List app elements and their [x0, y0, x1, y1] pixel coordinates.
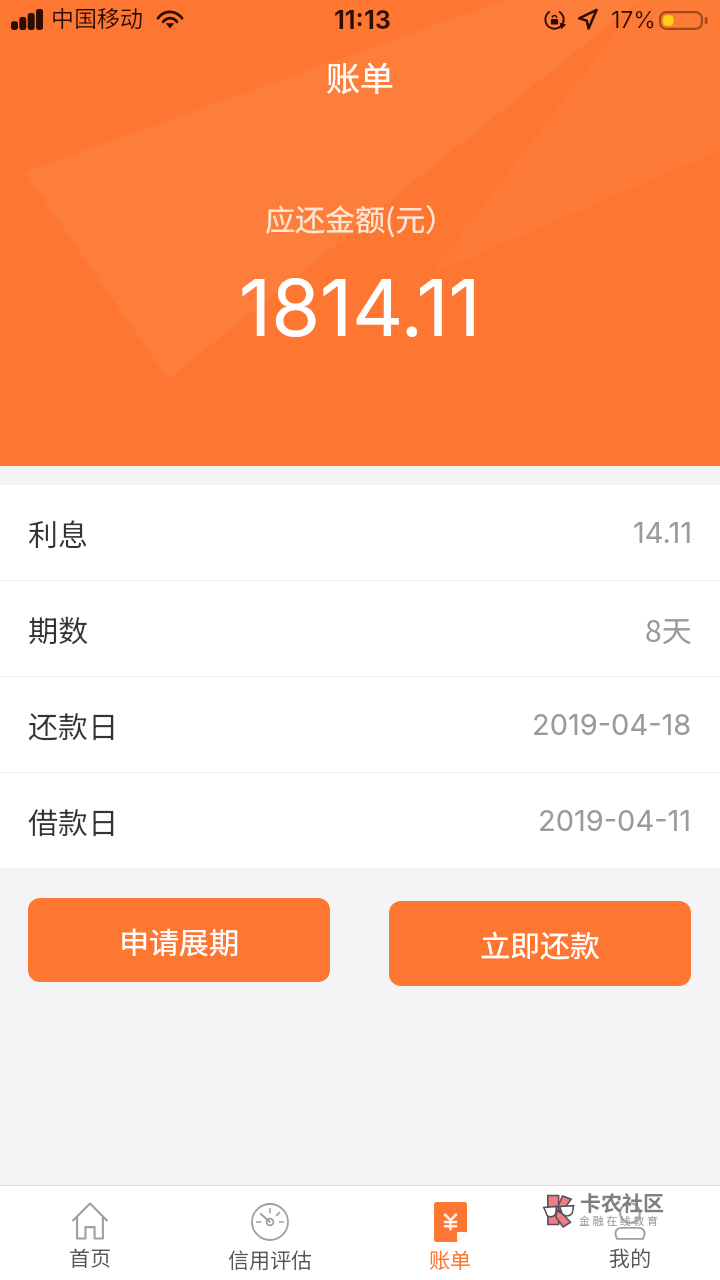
staticText: 金融在线教育: [579, 1212, 661, 1228]
staticText: 首页: [69, 1242, 111, 1272]
staticText: 17%: [611, 6, 656, 34]
button[interactable]: 期数: [0, 581, 720, 677]
staticText: 2019-04-11: [538, 803, 692, 838]
staticText: 立即还款: [480, 922, 600, 965]
button[interactable]: 利息: [0, 485, 720, 581]
staticText: 卡农社区: [580, 1187, 664, 1217]
staticText: 利息: [28, 511, 88, 554]
staticText: 1814.11: [239, 259, 481, 355]
staticText: 我的: [609, 1242, 651, 1272]
staticText: 借款日: [28, 799, 118, 842]
button[interactable]: 账单: [360, 1186, 540, 1280]
button[interactable]: 申请展期: [28, 898, 330, 982]
button[interactable]: 首页: [0, 1186, 180, 1280]
staticText: 账单: [326, 52, 394, 101]
button[interactable]: 还款日: [0, 677, 720, 773]
button[interactable]: 借款日: [0, 773, 720, 868]
staticText: 期数: [28, 607, 88, 650]
button[interactable]: 立即还款: [389, 901, 691, 986]
staticText: 信用评估: [228, 1244, 312, 1274]
button[interactable]: 信用评估: [180, 1186, 360, 1280]
staticText: 2019-04-18: [532, 707, 692, 742]
staticText: 中国移动: [51, 0, 143, 33]
staticText: 账单: [429, 1244, 471, 1274]
button[interactable]: 我的: [540, 1186, 720, 1280]
staticText: 应还金额(元）: [265, 196, 456, 239]
staticText: 8天: [645, 607, 692, 650]
staticText: 14.11: [633, 515, 692, 550]
staticText: 还款日: [28, 703, 118, 746]
staticText: 申请展期: [119, 919, 239, 962]
staticText: 11:13: [334, 5, 391, 35]
